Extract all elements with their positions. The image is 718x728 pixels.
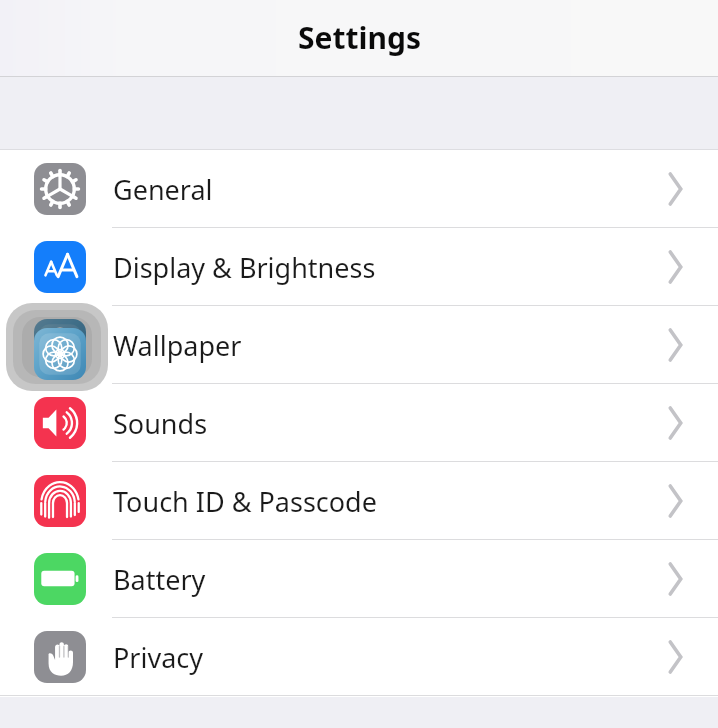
staticText: Sounds: [113, 405, 655, 442]
staticText: Wallpaper: [113, 327, 655, 364]
button[interactable]: Sounds: [0, 384, 718, 462]
staticText: Privacy: [113, 639, 655, 676]
staticText: Touch ID & Passcode: [113, 483, 655, 520]
staticText: Display & Brightness: [113, 249, 655, 286]
staticText: Settings: [298, 17, 421, 58]
button[interactable]: Privacy: [0, 618, 718, 696]
button[interactable]: General: [0, 150, 718, 228]
staticText: Battery: [113, 561, 655, 598]
button[interactable]: Touch ID & Passcode: [0, 462, 718, 540]
button[interactable]: Battery: [0, 540, 718, 618]
staticText: General: [113, 171, 655, 208]
button[interactable]: Wallpaper: [0, 306, 718, 384]
button[interactable]: Display & Brightness: [0, 228, 718, 306]
